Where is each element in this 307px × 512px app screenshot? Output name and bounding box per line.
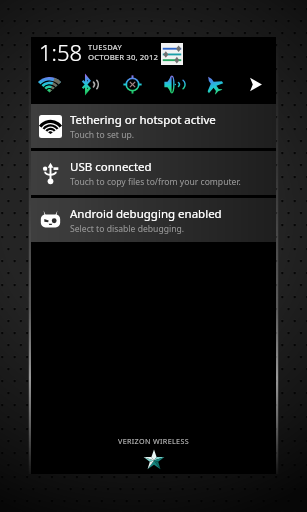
staticText: 1:58 [39, 37, 83, 66]
staticText: Touch to copy files to/from your compute… [70, 176, 241, 188]
button[interactable]: Bluetooth [76, 71, 102, 97]
button[interactable]: Android debugging enabled [31, 198, 276, 242]
staticText: Touch to set up. [70, 129, 135, 141]
staticText: Android debugging enabled [70, 206, 222, 222]
staticText: USB connected [70, 159, 152, 175]
button[interactable]: Airplane mode [200, 71, 226, 97]
button[interactable]: Location [119, 71, 145, 97]
button[interactable]: USB connected [31, 151, 276, 195]
staticText: VERIZON WIRELESS [118, 436, 190, 446]
button[interactable]: Tethering or hotspot active [31, 104, 276, 148]
staticText: Tethering or hotspot active [70, 112, 216, 128]
button[interactable]: Wi-Fi [36, 71, 62, 97]
staticText: Select to disable debugging. [70, 223, 185, 235]
staticText: TUESDAY [88, 42, 122, 52]
staticText: OCTOBER 30, 2012 [88, 52, 159, 63]
button[interactable]: More settings [242, 71, 268, 97]
button[interactable]: Quick settings [161, 43, 183, 65]
button[interactable]: Sound [160, 71, 186, 97]
